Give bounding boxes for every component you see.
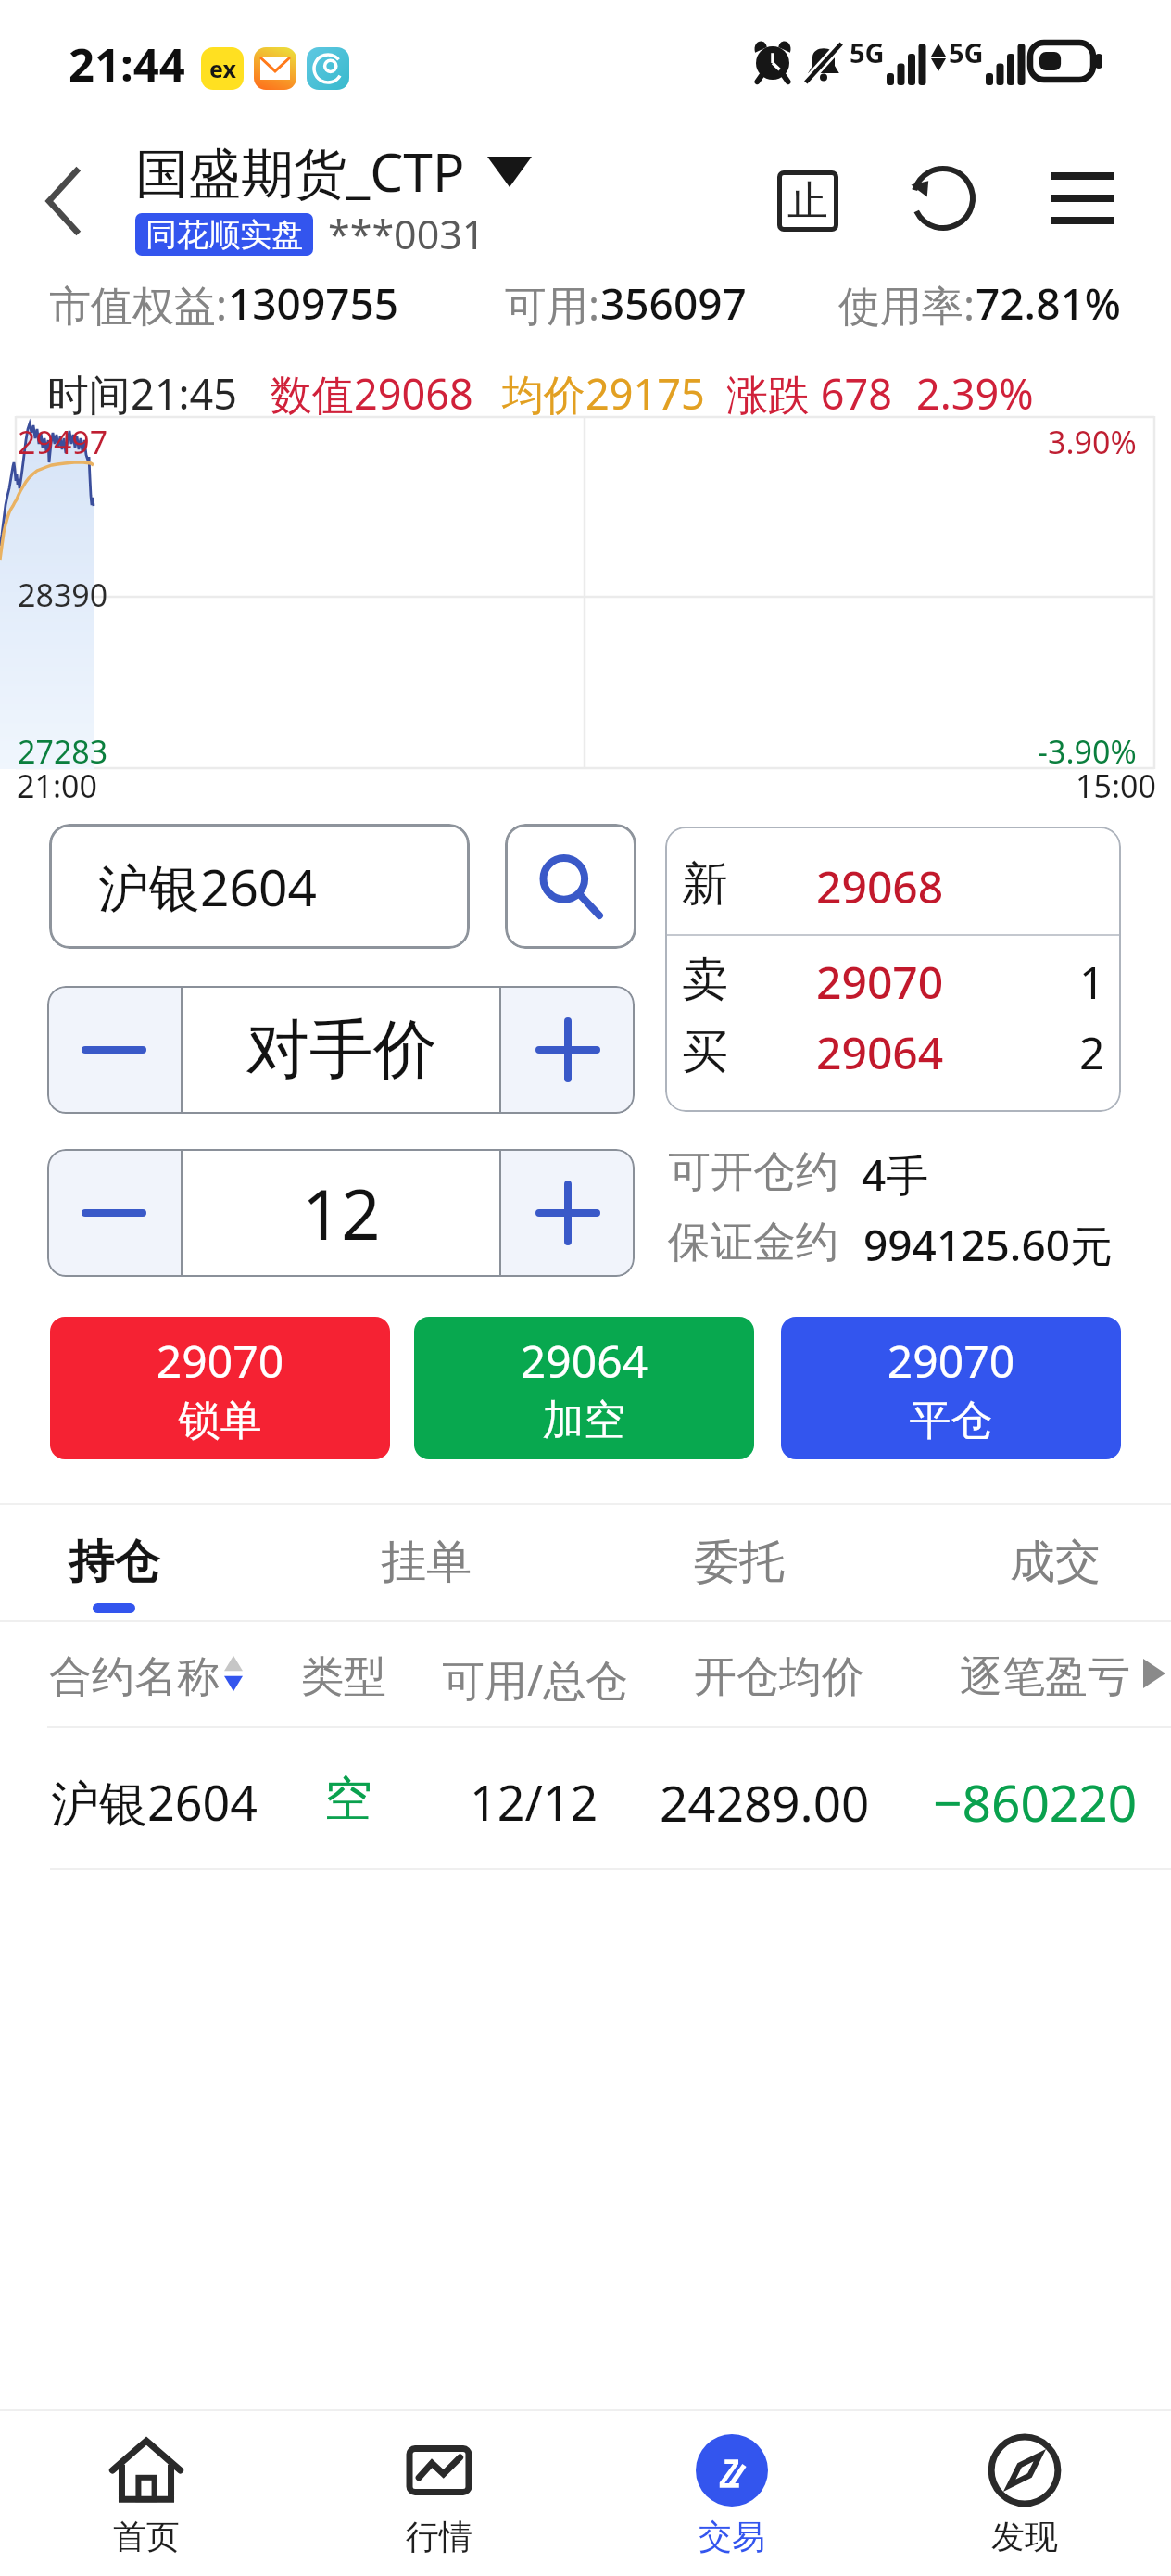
- staticText: 使用率:: [838, 276, 976, 333]
- staticText: −860220: [933, 1767, 1138, 1837]
- staticText: 成交: [1010, 1534, 1101, 1591]
- staticText: 止: [787, 176, 828, 227]
- staticText: 锁单: [50, 1395, 390, 1447]
- staticText: 12: [302, 1167, 381, 1260]
- staticText: 行情: [406, 2516, 472, 2557]
- staticText: 发现: [991, 2516, 1058, 2557]
- staticText: 沪银2604: [51, 1769, 258, 1835]
- staticText: 时间21:45: [47, 365, 238, 422]
- staticText: 类型: [301, 1650, 386, 1704]
- staticText: -3.90%: [1038, 730, 1137, 773]
- staticText: 2.39%: [916, 365, 1034, 422]
- staticText: ***0031: [328, 207, 485, 261]
- button[interactable]: Increase: [501, 986, 635, 1114]
- button[interactable]: Decrease: [47, 1149, 181, 1277]
- staticText: 合约名称: [49, 1650, 220, 1697]
- button[interactable]: 行情: [293, 2411, 585, 2576]
- staticText: 交易: [699, 2516, 765, 2557]
- staticText: 新: [682, 855, 728, 914]
- button[interactable]: Increase: [501, 1149, 635, 1277]
- button[interactable]: 沪银2604: [49, 824, 470, 949]
- staticText: 逐笔盈亏: [960, 1650, 1130, 1704]
- staticText: 加空: [414, 1395, 754, 1447]
- button[interactable]: Decrease: [47, 986, 181, 1114]
- staticText: 21:00: [17, 764, 97, 807]
- staticText: 可开仓约: [668, 1145, 838, 1199]
- button[interactable]: Menu: [1038, 154, 1127, 243]
- staticText: 29064: [414, 1331, 754, 1391]
- staticText: 均价29175: [502, 365, 705, 422]
- staticText: 平仓: [781, 1395, 1121, 1447]
- staticText: 3.90%: [1048, 421, 1137, 463]
- staticText: 同花顺实盘: [145, 215, 303, 255]
- button[interactable]: Refresh: [899, 154, 988, 243]
- staticText: 27283: [18, 730, 108, 773]
- button[interactable]: 首页: [0, 2411, 293, 2576]
- staticText: 沪银2604: [98, 852, 317, 921]
- button[interactable]: 合约名称: [49, 1650, 220, 1697]
- staticText: 空: [324, 1769, 372, 1830]
- staticText: 涨跌 678: [726, 365, 892, 422]
- button[interactable]: 委托: [593, 1505, 886, 1620]
- button[interactable]: 沪银2604: [0, 1742, 1171, 1853]
- button[interactable]: 成交: [909, 1505, 1171, 1620]
- staticText: 4手: [862, 1145, 929, 1204]
- staticText: 28390: [18, 574, 108, 616]
- staticText: 1309755: [228, 274, 399, 333]
- button[interactable]: More columns: [1136, 1648, 1171, 1699]
- staticText: 首页: [113, 2516, 180, 2557]
- staticText: 21:44: [69, 33, 185, 95]
- staticText: 开仓均价: [694, 1650, 864, 1704]
- button[interactable]: 发现: [878, 2411, 1171, 2576]
- staticText: 持仓: [69, 1534, 159, 1591]
- button[interactable]: 交易: [585, 2411, 878, 2576]
- button[interactable]: Stop order: [763, 157, 852, 246]
- staticText: 24289.00: [660, 1769, 870, 1836]
- button[interactable]: 29070: [50, 1317, 390, 1459]
- staticText: 29070: [816, 952, 944, 1012]
- staticText: 5G: [850, 34, 885, 70]
- staticText: 15:00: [1076, 764, 1156, 807]
- staticText: 市值权益:: [49, 276, 228, 333]
- staticText: 12/12: [470, 1769, 598, 1835]
- button[interactable]: 持仓: [0, 1505, 260, 1620]
- button[interactable]: 29064: [414, 1317, 754, 1459]
- staticText: 对手价: [246, 1010, 437, 1091]
- button[interactable]: 国盛期货_CTP: [135, 135, 532, 208]
- staticText: 29070: [50, 1331, 390, 1391]
- staticText: 数值29068: [271, 365, 473, 422]
- button[interactable]: Search: [505, 824, 636, 949]
- staticText: 国盛期货_CTP: [135, 135, 465, 208]
- staticText: 保证金约: [668, 1216, 838, 1269]
- staticText: 委托: [694, 1534, 785, 1591]
- staticText: 29070: [781, 1331, 1121, 1391]
- staticText: 1: [1079, 952, 1105, 1012]
- button[interactable]: 29070: [781, 1317, 1121, 1459]
- staticText: ex: [209, 53, 236, 84]
- staticText: 356097: [600, 274, 747, 333]
- button[interactable]: 挂单: [280, 1505, 573, 1620]
- staticText: 挂单: [381, 1534, 472, 1591]
- staticText: 卖: [682, 951, 728, 1009]
- staticText: 72.81%: [976, 274, 1121, 333]
- staticText: 可用:: [505, 276, 600, 333]
- staticText: 29068: [816, 856, 944, 916]
- staticText: 可用/总仓: [442, 1650, 629, 1709]
- staticText: 5G: [949, 34, 984, 70]
- staticText: 994125.60元: [863, 1216, 1114, 1274]
- staticText: 29497: [18, 421, 108, 463]
- staticText: 2: [1079, 1022, 1105, 1082]
- staticText: 买: [682, 1023, 728, 1081]
- button[interactable]: Back: [17, 155, 109, 247]
- staticText: 29064: [816, 1022, 944, 1082]
